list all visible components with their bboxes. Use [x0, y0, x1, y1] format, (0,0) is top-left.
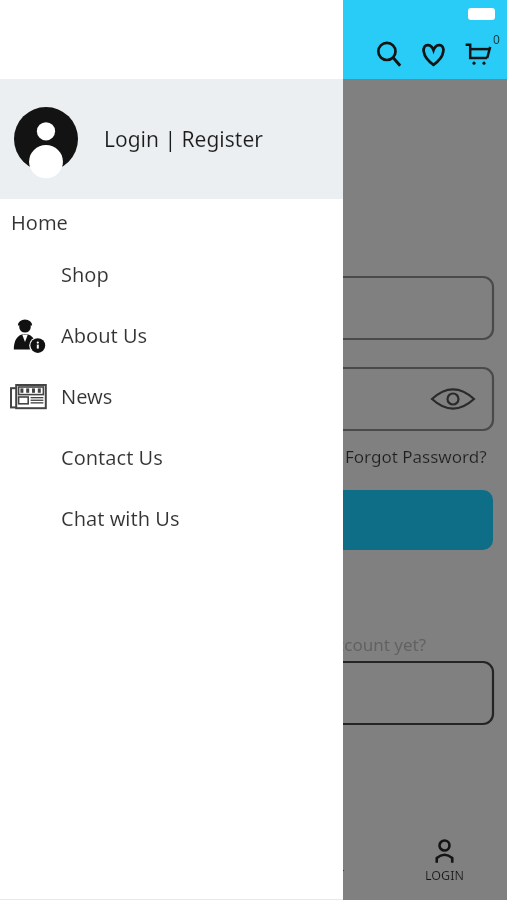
button[interactable]: Chat with Us [0, 488, 343, 549]
button[interactable]: Cart, 0 items [455, 32, 499, 76]
button[interactable]: Contact Us [0, 427, 343, 488]
staticText: News [61, 383, 113, 410]
staticText: Forgot Password? [345, 445, 487, 468]
button[interactable]: News [0, 366, 343, 427]
other: App logo [227, 17, 281, 87]
staticText: Home [11, 209, 68, 236]
button[interactable]: Login | Register [0, 79, 343, 199]
button[interactable]: About Us [0, 305, 343, 366]
staticText: Login | Register [104, 125, 263, 154]
staticText: Shop [61, 261, 109, 288]
staticText: About Us [61, 322, 148, 349]
staticText: Don't have an account yet? [212, 633, 427, 656]
button[interactable]: Shop [0, 244, 343, 305]
staticText: 0 [493, 31, 500, 47]
staticText: Chat with Us [61, 505, 180, 532]
staticText: Contact Us [61, 444, 163, 471]
staticText: T [337, 866, 344, 883]
button[interactable]: Wishlist [411, 32, 455, 76]
button[interactable]: Home [0, 200, 343, 244]
staticText: LOGIN [425, 867, 464, 884]
button[interactable]: Search [367, 32, 411, 76]
button[interactable]: LOGIN [409, 839, 479, 884]
button[interactable] [150, 490, 493, 550]
